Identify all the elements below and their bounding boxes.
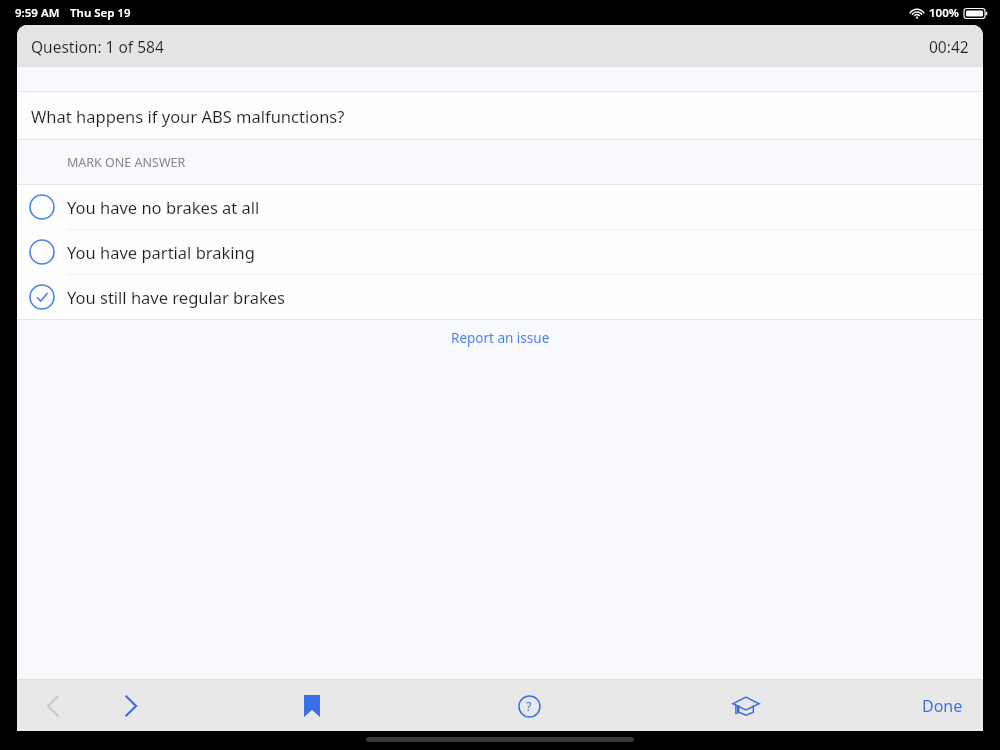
staticText: What happens if your ABS malfunctions? xyxy=(31,105,345,127)
button[interactable]: Previous question xyxy=(31,684,77,728)
staticText: Thu Sep 19 xyxy=(70,5,131,21)
staticText: 100% xyxy=(929,5,959,21)
staticText: Report an issue xyxy=(451,329,550,347)
staticText: You still have regular brakes xyxy=(67,286,285,308)
button[interactable]: You still have regular brakes xyxy=(17,275,983,319)
staticText: Question: 1 of 584 xyxy=(31,36,164,57)
button[interactable]: Study xyxy=(723,684,769,728)
staticText: You have no brakes at all xyxy=(67,196,260,218)
button[interactable]: Report an issue xyxy=(443,325,558,351)
staticText: 9:59 AM xyxy=(15,5,60,21)
staticText: MARK ONE ANSWER xyxy=(67,154,186,171)
button[interactable]: Done xyxy=(906,680,979,731)
button[interactable]: Help xyxy=(506,684,552,728)
staticText: ? xyxy=(526,698,532,715)
staticText: 00:42 xyxy=(929,36,969,57)
button[interactable]: Bookmark xyxy=(289,684,335,728)
button[interactable]: Next question xyxy=(107,684,153,728)
staticText: Done xyxy=(922,695,963,717)
button[interactable]: You have partial braking xyxy=(17,230,983,274)
button[interactable]: You have no brakes at all xyxy=(17,185,983,229)
staticText: You have partial braking xyxy=(67,241,255,263)
